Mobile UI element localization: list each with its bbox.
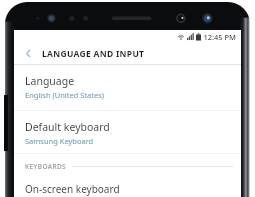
button[interactable]: Language [14,65,241,110]
staticText: KEYBOARDS [25,162,67,171]
staticText: On-screen keyboard [25,182,120,196]
staticText: 12:45 PM [203,32,236,42]
button[interactable]: Default keyboard [14,111,241,153]
button[interactable]: On-screen keyboard [14,181,241,197]
button[interactable]: Navigate up [14,43,42,64]
staticText: Default keyboard [25,120,110,134]
staticText: LANGUAGE AND INPUT [42,48,145,60]
staticText: Language [25,74,75,88]
staticText: English (United States) [25,90,105,100]
staticText: Samsung Keyboard [25,136,94,146]
